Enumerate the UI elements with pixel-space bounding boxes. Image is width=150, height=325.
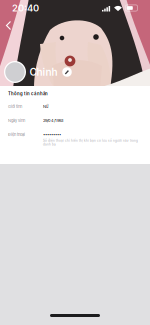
staticText: 20:40 — [12, 2, 39, 14]
button[interactable]: Back — [0, 16, 17, 35]
staticText: Nữ — [43, 104, 48, 109]
staticText: Điện thoại — [8, 132, 25, 137]
staticText: Giới tính — [8, 104, 22, 109]
staticText: Thông tin cá nhân — [8, 91, 48, 96]
staticText: Ngày sinh — [8, 118, 25, 123]
staticText: ••••••••• — [43, 132, 61, 137]
button[interactable]: Edit profile — [61, 66, 73, 78]
staticText: Số điện thoại chỉ hiển thị khi bạn có lư… — [43, 139, 138, 146]
staticText: Chinh — [29, 66, 57, 78]
staticText: 29/04/1993 — [43, 118, 63, 123]
